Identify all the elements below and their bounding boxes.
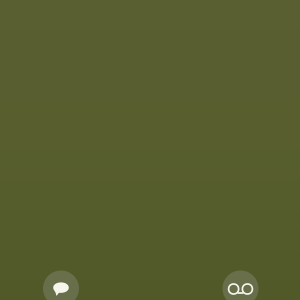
- button[interactable]: Voicemail: [222, 270, 258, 300]
- button[interactable]: Message: [43, 270, 79, 300]
